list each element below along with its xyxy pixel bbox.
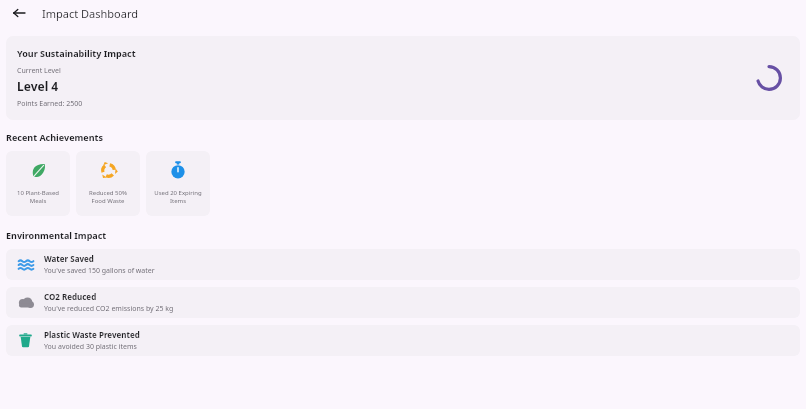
staticText: CO2 Reduced <box>44 291 97 302</box>
button[interactable]: Your Sustainability Impact <box>6 36 800 120</box>
button[interactable]: 10 Plant-Based Meals <box>6 151 70 216</box>
staticText: You avoided 30 plastic items <box>44 342 137 352</box>
staticText: You've reduced CO2 emissions by 25 kg <box>44 304 174 314</box>
staticText: You've saved 150 gallons of water <box>44 266 155 276</box>
staticText: Current Level <box>17 66 61 76</box>
staticText: Level 4 <box>17 78 59 94</box>
button[interactable]: Used 20 Expiring Items <box>146 151 210 216</box>
button[interactable]: Back <box>8 2 30 24</box>
staticText: Your Sustainability Impact <box>17 47 136 59</box>
staticText: 10 Plant-Based Meals <box>9 189 67 205</box>
button[interactable]: Water Saved <box>6 249 800 280</box>
staticText: Used 20 Expiring Items <box>149 189 207 205</box>
button[interactable]: Reduced 50% Food Waste <box>76 151 140 216</box>
staticText: Impact Dashboard <box>42 6 139 21</box>
staticText: Plastic Waste Prevented <box>44 329 140 340</box>
staticText: Reduced 50% Food Waste <box>79 189 137 205</box>
button[interactable]: CO2 Reduced <box>6 287 800 318</box>
staticText: Recent Achievements <box>6 131 103 143</box>
staticText: Environmental Impact <box>6 229 107 241</box>
staticText: Water Saved <box>44 253 94 264</box>
staticText: Points Earned: 2500 <box>17 99 83 109</box>
button[interactable]: Plastic Waste Prevented <box>6 325 800 356</box>
